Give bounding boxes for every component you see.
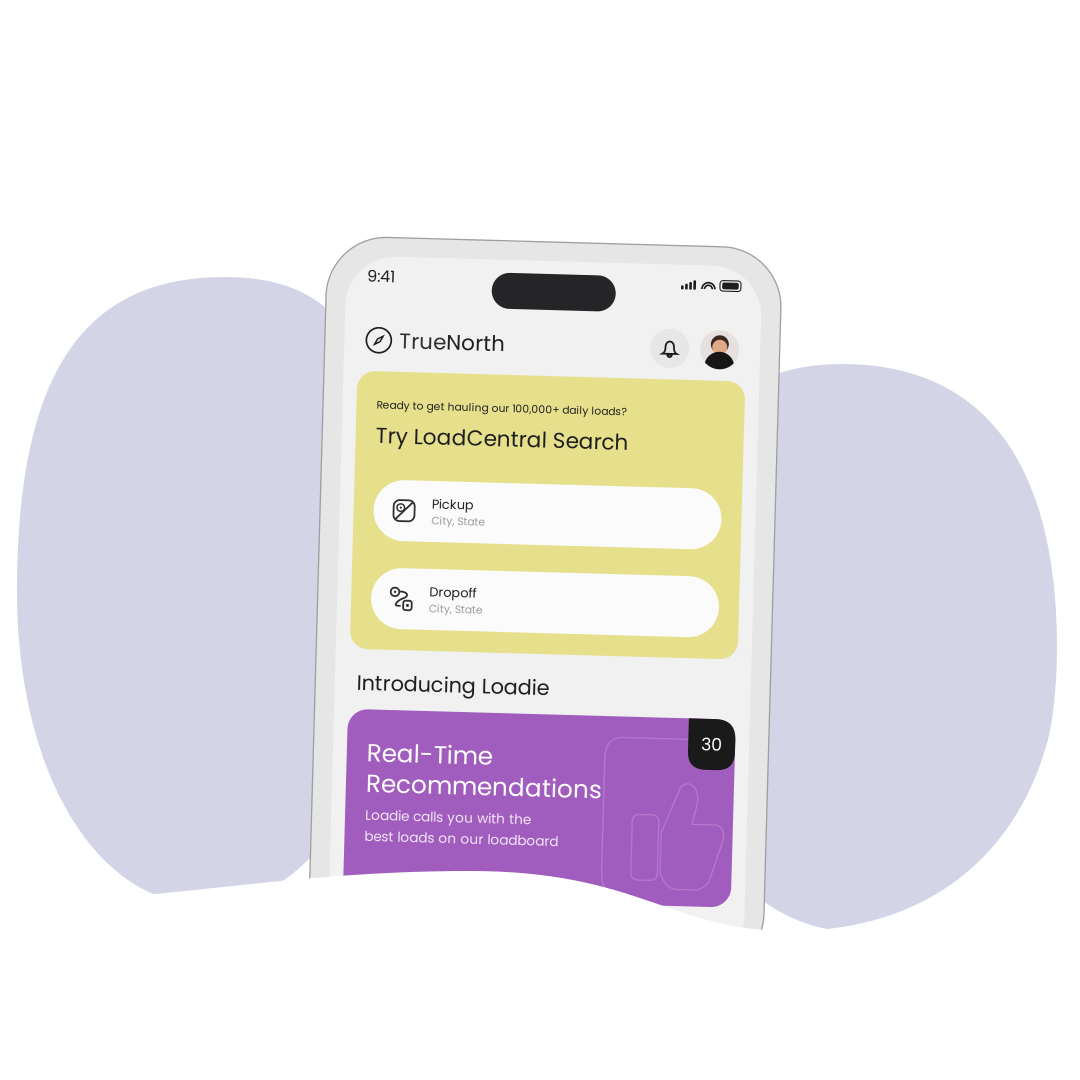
staticText: North [439,330,498,360]
button[interactable]: Dropoff [371,572,719,633]
staticText: 30 [705,728,726,752]
staticText: Loadie calls you with the [371,810,537,829]
staticText: best loads on our loadboard [371,831,565,850]
button[interactable]: Pickup [371,484,719,545]
staticText: Try LoadCentral Search [371,425,624,455]
button[interactable]: Real-Time [351,714,739,902]
staticText: Pickup [429,498,471,516]
staticText: True [392,330,439,360]
staticText: Real-Time [371,740,497,775]
staticText: Recommendations [371,771,607,805]
staticText: Ready to get hauling our 100,000+ daily … [371,402,622,417]
button[interactable]: Profile [693,325,732,364]
staticText: Introducing Loadie [359,673,552,702]
staticText: 9:41 [358,270,386,292]
staticText: Dropoff [429,586,476,604]
button[interactable]: Notifications [643,325,682,364]
button[interactable]: True [358,330,498,360]
staticText: City, State [429,516,483,531]
staticText: City, State [429,604,483,619]
